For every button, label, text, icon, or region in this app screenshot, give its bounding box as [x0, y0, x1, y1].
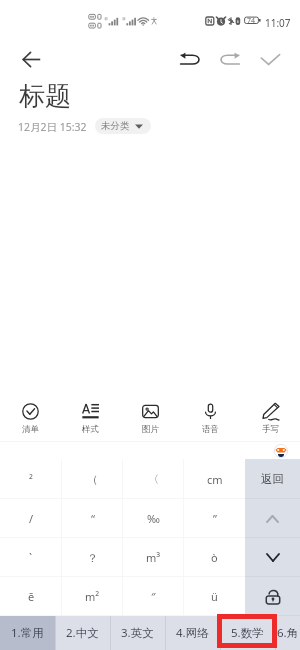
button[interactable]: 样式	[60, 386, 120, 442]
staticText: 2.中文	[66, 625, 99, 641]
button[interactable]: Undo	[171, 40, 207, 78]
staticText: ˋ	[29, 550, 33, 565]
button[interactable]: ˋ	[0, 538, 62, 577]
staticText: ü	[211, 589, 218, 604]
staticText: 清单	[22, 424, 39, 435]
staticText: 74	[247, 16, 256, 26]
button[interactable]: 1.常用	[0, 616, 55, 650]
button[interactable]: 图片	[120, 386, 180, 442]
button[interactable]: ‰	[123, 499, 184, 538]
button[interactable]: ？	[62, 538, 123, 577]
button[interactable]: ″	[123, 577, 184, 616]
button[interactable]: Lock	[245, 577, 300, 616]
button[interactable]: Done	[252, 40, 288, 78]
staticText: 11:07	[265, 16, 291, 30]
staticText: 12月2日 15:32	[18, 120, 87, 134]
staticText: ò	[211, 550, 218, 565]
button[interactable]: 4.网络	[165, 616, 220, 650]
button[interactable]: m³	[123, 538, 184, 577]
staticText: ē	[28, 589, 35, 604]
button[interactable]: ē	[0, 577, 62, 616]
button[interactable]: 语音	[180, 386, 240, 442]
staticText: 样式	[82, 424, 99, 435]
button[interactable]: 3.英文	[110, 616, 165, 650]
staticText: m³	[146, 550, 161, 565]
staticText: ‰	[147, 511, 160, 526]
staticText: ²	[29, 472, 33, 487]
staticText: 5.数学	[231, 625, 264, 641]
button[interactable]: Page up	[245, 499, 300, 538]
button[interactable]: ²	[0, 459, 62, 499]
button[interactable]: Back	[13, 40, 49, 78]
staticText: 4.网络	[176, 625, 209, 641]
staticText: 未分类	[101, 120, 130, 132]
staticText: 图片	[142, 424, 159, 435]
button[interactable]: Redo	[212, 40, 248, 78]
button[interactable]: 未分类	[95, 118, 151, 134]
staticText: 返回	[261, 472, 284, 486]
staticText: m²	[85, 589, 100, 604]
button[interactable]: ”	[184, 499, 245, 538]
staticText: 标题	[19, 80, 71, 113]
other: Page up	[266, 515, 279, 523]
button[interactable]: 5.数学	[220, 616, 275, 650]
staticText: 手写	[262, 424, 279, 435]
button[interactable]: /	[0, 499, 62, 538]
staticText: 1.常用	[11, 625, 44, 641]
button[interactable]: Page down	[245, 538, 300, 577]
staticText: cm	[207, 472, 223, 487]
other: Lock	[266, 589, 280, 605]
staticText: ？	[87, 551, 98, 565]
staticText: 3.英文	[121, 625, 154, 641]
staticText: ”	[213, 511, 217, 526]
staticText: 语音	[202, 424, 219, 435]
button[interactable]: 清单	[0, 386, 60, 442]
staticText: 6.角	[277, 625, 299, 641]
button[interactable]: （	[62, 459, 123, 499]
button[interactable]: 手写	[240, 386, 300, 442]
staticText: ″	[151, 589, 156, 604]
button[interactable]: 6.角	[275, 616, 300, 650]
staticText: “	[91, 511, 95, 526]
button[interactable]: 返回	[245, 459, 300, 499]
button[interactable]: 2.中文	[55, 616, 110, 650]
button[interactable]: ò	[184, 538, 245, 577]
staticText: /	[29, 511, 34, 526]
button[interactable]: m²	[62, 577, 123, 616]
button[interactable]: 〈	[123, 459, 184, 499]
button[interactable]: “	[62, 499, 123, 538]
staticText: 〈	[148, 472, 159, 486]
button[interactable]: cm	[184, 459, 245, 499]
staticText: （	[87, 472, 98, 486]
button[interactable]: ü	[184, 577, 245, 616]
other: Page down	[266, 553, 280, 562]
